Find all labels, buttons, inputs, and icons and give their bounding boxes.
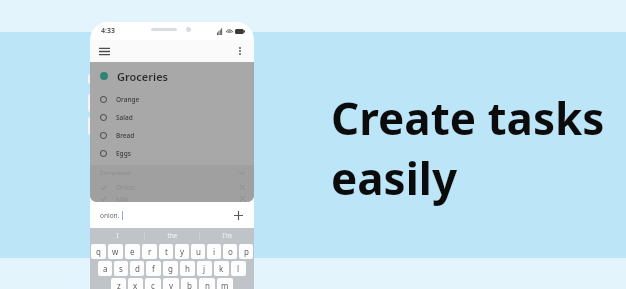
staticText: h [185, 263, 190, 274]
button[interactable]: d [130, 261, 144, 276]
button[interactable]: t [159, 244, 173, 259]
staticText: Salad [116, 113, 133, 122]
staticText: g [168, 263, 173, 274]
button[interactable]: x [128, 278, 143, 289]
staticText: p [244, 246, 249, 257]
button[interactable]: f [146, 261, 161, 276]
staticText: k [219, 263, 224, 274]
button[interactable]: Eggs [90, 144, 254, 162]
staticText: i [213, 246, 216, 257]
staticText: n [205, 280, 210, 289]
staticText: Completed [100, 169, 131, 177]
button[interactable]: h [180, 261, 195, 276]
button[interactable]: Orange [90, 90, 254, 108]
button[interactable]: u [191, 244, 205, 259]
staticText: w [112, 246, 119, 257]
staticText: q [96, 246, 101, 257]
staticText: the [167, 231, 178, 240]
staticText: Bread [116, 131, 135, 140]
button[interactable]: I'm [200, 228, 254, 243]
button[interactable]: Milk [90, 195, 254, 202]
button[interactable]: z [111, 278, 126, 289]
staticText: z [117, 280, 121, 289]
button[interactable]: Groceries [90, 62, 254, 90]
button[interactable]: o [223, 244, 237, 259]
button[interactable]: r [142, 244, 157, 259]
staticText: o [228, 246, 233, 257]
staticText: Create tasks [331, 88, 605, 148]
staticText: Orange [116, 95, 140, 104]
button[interactable]: b [181, 278, 197, 289]
staticText: l [237, 263, 240, 274]
staticText: u [196, 246, 201, 257]
staticText: Milk [116, 195, 129, 202]
staticText: Eggs [116, 149, 131, 158]
staticText: y [180, 246, 185, 257]
button[interactable]: y [175, 244, 189, 259]
button[interactable]: More options [233, 44, 247, 58]
button[interactable]: Bread [90, 126, 254, 144]
button[interactable]: c [145, 278, 161, 289]
staticText: j [203, 263, 206, 274]
button[interactable]: a [98, 261, 112, 276]
staticText: b [187, 280, 192, 289]
staticText: 4:33 [101, 26, 115, 36]
staticText: t [165, 246, 168, 257]
staticText: easily [331, 148, 458, 208]
staticText: v [169, 280, 174, 289]
button[interactable]: m [217, 278, 233, 289]
staticText: m [221, 280, 229, 289]
button[interactable]: k [214, 261, 229, 276]
button[interactable]: q [91, 244, 106, 259]
button[interactable]: Add task [231, 208, 245, 222]
staticText: d [135, 263, 140, 274]
staticText: I'm [222, 231, 232, 240]
staticText: f [152, 263, 155, 274]
button[interactable]: n [199, 278, 215, 289]
button[interactable]: g [163, 261, 178, 276]
button[interactable]: v [163, 278, 179, 289]
button[interactable]: Menu [97, 44, 111, 58]
button[interactable]: the [145, 228, 199, 243]
button[interactable]: e [125, 244, 140, 259]
staticText: e [130, 246, 135, 257]
button[interactable]: i [207, 244, 221, 259]
staticText: s [119, 263, 123, 274]
button[interactable]: l [231, 261, 246, 276]
staticText: r [148, 246, 152, 257]
button[interactable]: Salad [90, 108, 254, 126]
button[interactable]: p [239, 244, 253, 259]
button[interactable]: j [197, 261, 212, 276]
staticText: a [103, 263, 108, 274]
staticText: onion. [100, 211, 120, 220]
staticText: x [133, 280, 138, 289]
staticText: I [116, 231, 119, 240]
button[interactable]: w [108, 244, 123, 259]
staticText: Groceries [117, 69, 169, 84]
button[interactable]: s [114, 261, 128, 276]
staticText: Onion [116, 183, 135, 192]
staticText: c [151, 280, 155, 289]
button[interactable]: onion. [90, 202, 254, 228]
